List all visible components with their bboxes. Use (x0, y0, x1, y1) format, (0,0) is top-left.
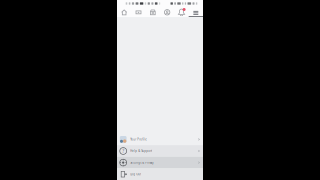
button[interactable]: Profile (160, 7, 174, 17)
button[interactable]: Notifications (174, 7, 189, 17)
button[interactable]: ? (117, 145, 203, 157)
button[interactable]: Menu (189, 7, 203, 17)
staticText: Help & Support (130, 149, 152, 153)
button[interactable]: Marketplace (146, 7, 160, 17)
button[interactable]: Log Out (117, 168, 203, 180)
button[interactable]: Home (117, 7, 131, 17)
staticText: ? (122, 148, 124, 154)
button[interactable]: Video (131, 7, 146, 17)
button[interactable]: Settings & Privacy (117, 157, 203, 168)
staticText: Log Out (130, 172, 141, 176)
staticText: Your Profile (130, 138, 147, 141)
button[interactable]: Your Profile (117, 134, 203, 145)
staticText: Settings & Privacy (130, 161, 153, 164)
